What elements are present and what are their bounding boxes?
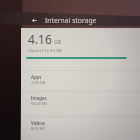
staticText: GB <box>54 39 61 46</box>
button[interactable]: Videos <box>21 117 140 140</box>
staticText: 60.00 KB <box>31 101 47 106</box>
staticText: 8.00 KB <box>31 126 45 131</box>
staticText: 4.16 <box>28 31 52 47</box>
button[interactable]: Back <box>30 16 38 24</box>
button[interactable]: Apps <box>21 71 140 91</box>
staticText: Internal storage <box>45 16 97 25</box>
staticText: Images <box>31 95 47 101</box>
staticText: Apps <box>31 74 42 80</box>
button[interactable]: Images <box>21 92 140 116</box>
staticText: 2.99 GB <box>31 80 46 85</box>
staticText: Videos <box>31 120 45 126</box>
staticText: Used of 12.20 GB <box>28 48 62 54</box>
